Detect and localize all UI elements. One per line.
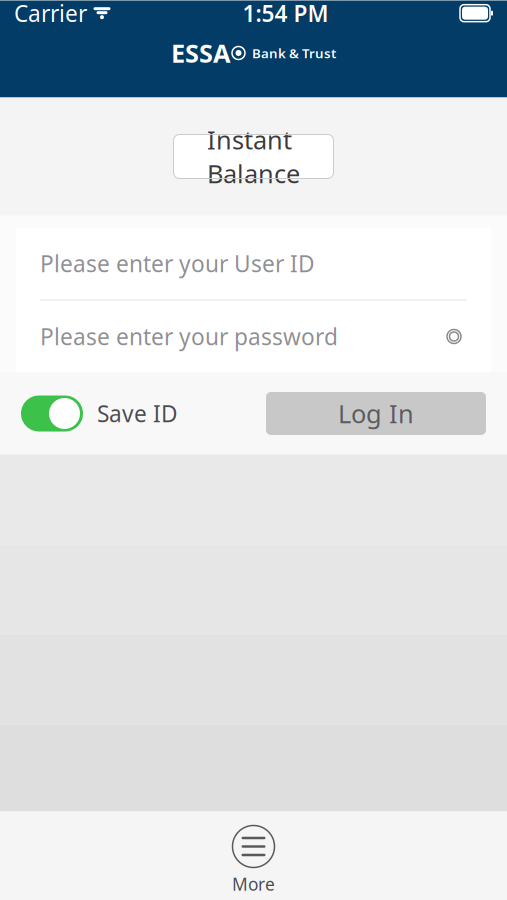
- staticText: Please enter your User ID: [40, 248, 315, 278]
- staticText: Log In: [338, 397, 414, 430]
- staticText: Bank & Trust: [252, 44, 336, 62]
- button[interactable]: More: [232, 825, 275, 895]
- staticText: 1:54 PM: [242, 0, 328, 28]
- staticText: Carrier: [14, 0, 87, 28]
- button[interactable]: Log In: [266, 392, 486, 435]
- button[interactable]: Please enter your User ID: [16, 227, 491, 299]
- button[interactable]: Please enter your password: [16, 300, 491, 372]
- staticText: Save ID: [97, 398, 178, 428]
- staticText: Instant Balance: [207, 123, 300, 190]
- button[interactable]: Save ID: [21, 395, 178, 431]
- staticText: Please enter your password: [40, 321, 338, 351]
- staticText: More: [232, 872, 275, 895]
- button[interactable]: Instant Balance: [173, 134, 333, 178]
- staticText: ESSA: [171, 36, 231, 70]
